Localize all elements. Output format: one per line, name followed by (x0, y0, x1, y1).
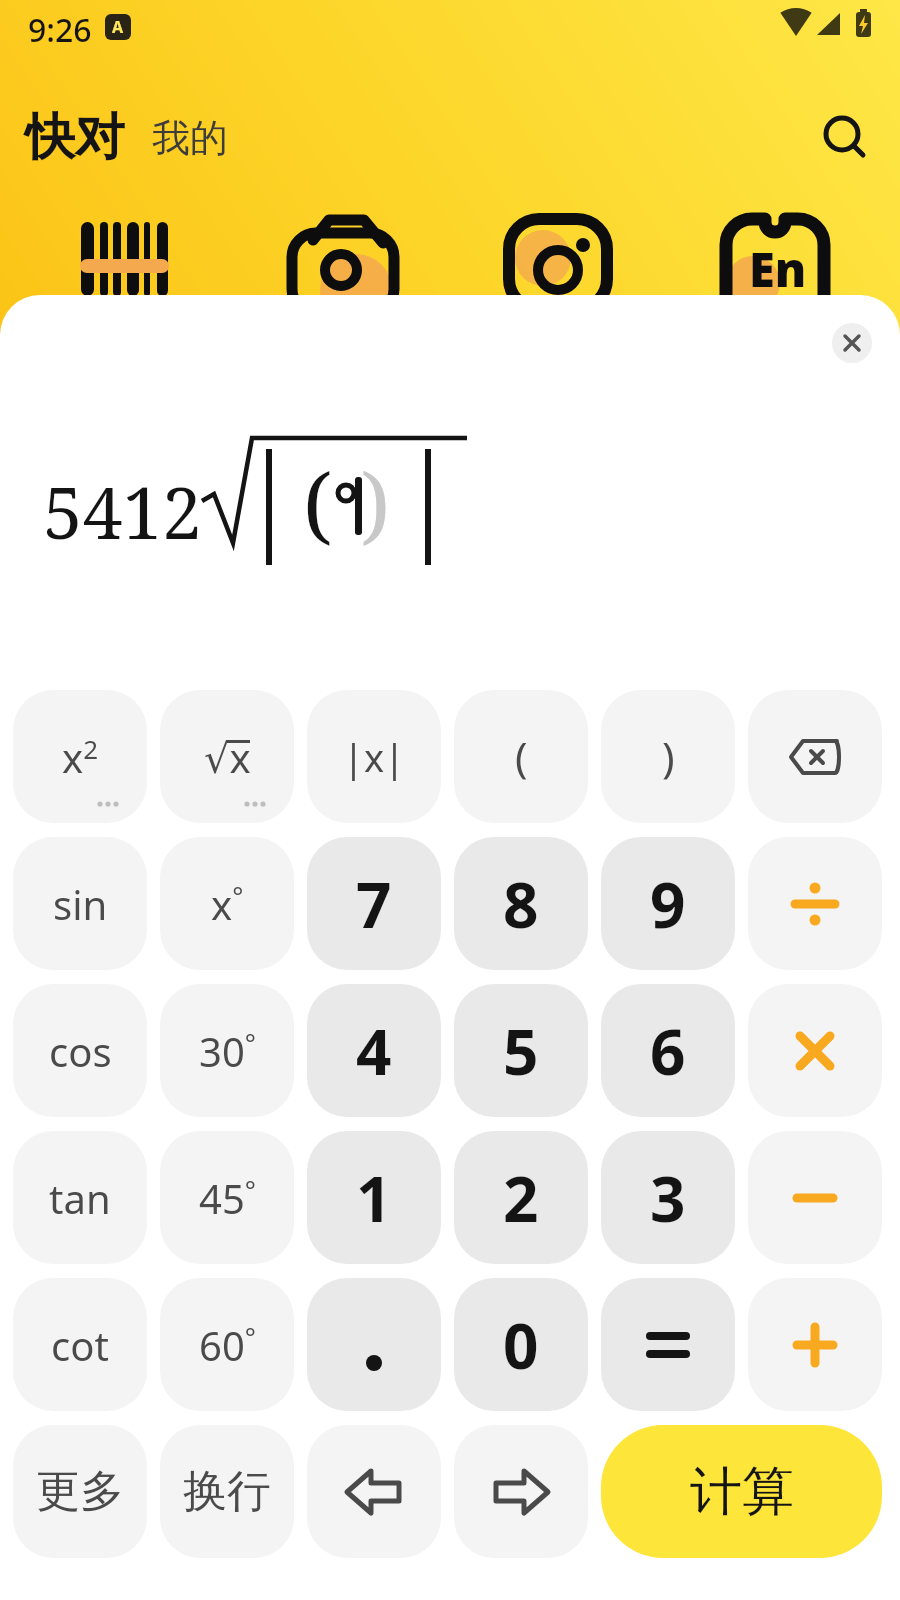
button[interactable] (601, 1278, 735, 1411)
button[interactable] (307, 1278, 441, 1411)
button[interactable] (307, 1425, 441, 1558)
staticText: 换行 (183, 1464, 271, 1519)
button[interactable]: 4 (307, 984, 441, 1117)
button[interactable]: sin (13, 837, 147, 970)
staticText: 计算 (690, 1459, 794, 1525)
button[interactable]: ( (454, 690, 588, 823)
button[interactable]: 5 (454, 984, 588, 1117)
staticText: 60° (199, 1318, 256, 1372)
staticText: cot (51, 1318, 109, 1372)
staticText: 5 (503, 1009, 539, 1093)
staticText: √x (204, 730, 251, 784)
button[interactable]: x° (160, 837, 294, 970)
staticText: 9 (650, 862, 686, 946)
staticText: x° (211, 877, 244, 931)
button[interactable]: 我的 (152, 114, 228, 162)
staticText: En (749, 237, 807, 301)
button[interactable] (724, 215, 826, 295)
button[interactable]: cot (13, 1278, 147, 1411)
staticText: 3 (650, 1156, 686, 1240)
button[interactable] (75, 215, 175, 295)
button[interactable]: 换行 (160, 1425, 294, 1558)
button[interactable]: 2 (454, 1131, 588, 1264)
button[interactable]: √x (160, 690, 294, 823)
staticText: A (112, 16, 124, 38)
staticText: ) (662, 728, 675, 785)
staticText: 30° (199, 1024, 256, 1078)
button[interactable]: 60° (160, 1278, 294, 1411)
button[interactable] (820, 112, 870, 162)
button[interactable] (748, 837, 882, 970)
button[interactable] (454, 1425, 588, 1558)
button[interactable] (748, 984, 882, 1117)
button[interactable]: 30° (160, 984, 294, 1117)
staticText: sin (53, 877, 108, 931)
staticText: cos (49, 1024, 112, 1078)
staticText: |x| (343, 731, 405, 783)
button[interactable]: 6 (601, 984, 735, 1117)
button[interactable]: ) (601, 690, 735, 823)
button[interactable]: 3 (601, 1131, 735, 1264)
staticText: 6 (650, 1009, 686, 1093)
staticText: tan (49, 1171, 111, 1225)
button[interactable] (507, 215, 609, 295)
button[interactable] (748, 1131, 882, 1264)
button[interactable]: 9 (601, 837, 735, 970)
button[interactable]: 更多 (13, 1425, 147, 1558)
staticText: 更多 (36, 1464, 124, 1519)
button[interactable]: |x| (307, 690, 441, 823)
button[interactable] (290, 215, 395, 295)
button[interactable]: tan (13, 1131, 147, 1264)
button[interactable]: 7 (307, 837, 441, 970)
button[interactable]: 45° (160, 1131, 294, 1264)
button[interactable]: x2 (13, 690, 147, 823)
staticText: x2 (62, 730, 99, 784)
staticText: ) (361, 445, 391, 559)
button[interactable] (748, 1278, 882, 1411)
staticText: 8 (503, 862, 539, 946)
staticText: 4 (356, 1009, 392, 1093)
button[interactable]: 8 (454, 837, 588, 970)
button[interactable]: 1 (307, 1131, 441, 1264)
staticText: ( (515, 728, 528, 785)
button[interactable]: cos (13, 984, 147, 1117)
button[interactable]: 0 (454, 1278, 588, 1411)
staticText: 1 (356, 1156, 392, 1240)
button[interactable] (832, 323, 872, 363)
staticText: 45° (199, 1171, 256, 1225)
staticText: 5412 (43, 463, 202, 560)
staticText: 2 (503, 1156, 539, 1240)
staticText: 0 (503, 1303, 539, 1387)
staticText: ( (303, 445, 333, 559)
staticText: 9:26 (28, 8, 92, 52)
button[interactable]: 计算 (601, 1425, 882, 1558)
staticText: 7 (356, 862, 392, 946)
button[interactable] (748, 690, 882, 823)
staticText: 快对 (25, 106, 125, 169)
